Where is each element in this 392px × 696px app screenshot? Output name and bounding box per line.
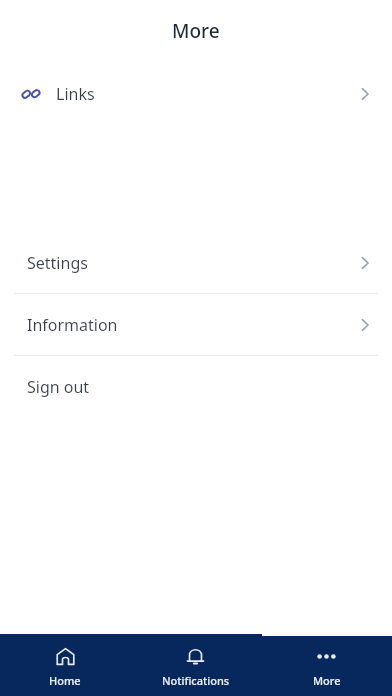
button[interactable]: Information xyxy=(0,294,392,355)
staticText: More xyxy=(313,673,341,688)
staticText: Notifications xyxy=(162,673,230,688)
button[interactable]: More xyxy=(261,645,392,688)
button[interactable]: Notifications xyxy=(130,645,261,688)
staticText: Information xyxy=(27,314,118,336)
button[interactable]: Settings xyxy=(0,232,392,293)
button[interactable]: Home xyxy=(0,645,130,688)
staticText: Settings xyxy=(27,252,88,274)
staticText: Sign out xyxy=(27,376,90,398)
button[interactable]: Links xyxy=(0,62,392,126)
button[interactable]: Sign out xyxy=(0,356,392,417)
staticText: Links xyxy=(56,83,95,105)
staticText: More xyxy=(172,18,220,44)
staticText: Home xyxy=(49,673,81,688)
